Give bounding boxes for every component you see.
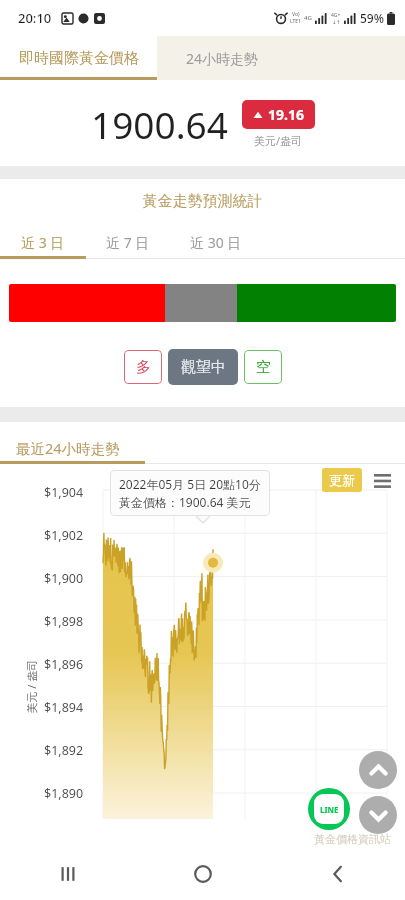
staticText: LINE: [320, 804, 339, 815]
staticText: 美元 / 盎司: [23, 659, 38, 713]
button[interactable]: 近 7 日: [86, 225, 170, 259]
staticText: 最近24小時走勢: [16, 438, 120, 458]
staticText: 美元/盎司: [254, 133, 303, 148]
button[interactable]: Scroll up: [359, 751, 397, 789]
staticText: $1,896: [44, 656, 84, 673]
staticText: 近 7 日: [106, 233, 150, 252]
staticText: 59%: [360, 10, 384, 26]
staticText: 24小時走勢: [186, 49, 259, 68]
button[interactable]: 觀望中: [168, 349, 238, 385]
staticText: 即時國際黃金價格: [19, 49, 139, 68]
staticText: 19.16: [268, 105, 304, 124]
staticText: LTE1: [290, 18, 301, 25]
button[interactable]: 19.16: [253, 105, 304, 124]
button[interactable]: Home: [135, 848, 270, 900]
staticText: 更新: [329, 472, 355, 488]
staticText: 20:10: [18, 9, 52, 27]
staticText: 4G: [304, 14, 312, 22]
button[interactable]: Recents: [0, 848, 135, 900]
button[interactable]: 空: [244, 350, 282, 384]
staticText: 2022年05月 5日 20點10分: [119, 476, 261, 492]
button[interactable]: 近 30 日: [170, 225, 262, 259]
staticText: $1,894: [44, 699, 84, 716]
staticText: 1900.64: [91, 99, 228, 149]
staticText: 4G+: [331, 12, 341, 19]
staticText: $1,892: [44, 742, 84, 759]
button[interactable]: 近 3 日: [0, 225, 86, 259]
button[interactable]: LINE: [308, 788, 350, 830]
button[interactable]: Menu: [371, 469, 393, 491]
staticText: 觀望中: [181, 358, 226, 377]
button[interactable]: 多: [124, 350, 162, 384]
staticText: 黃金價格：1900.64 美元: [119, 494, 251, 510]
button[interactable]: 更新: [329, 472, 355, 488]
staticText: 近 30 日: [190, 233, 242, 252]
button[interactable]: 24小時走勢: [157, 36, 287, 80]
staticText: ↓↑: [332, 19, 341, 25]
staticText: $1,902: [44, 527, 84, 544]
staticText: $1,898: [44, 613, 84, 630]
staticText: 多: [136, 358, 151, 377]
staticText: $1,890: [44, 785, 84, 802]
button[interactable]: Scroll down: [359, 796, 397, 834]
staticText: 空: [256, 358, 271, 377]
staticText: 黃金走勢預測統計: [0, 192, 405, 211]
staticText: Vo): [292, 11, 300, 18]
staticText: 黃金價格資訊站: [314, 832, 391, 846]
button[interactable]: Back: [270, 848, 405, 900]
staticText: $1,900: [44, 570, 84, 587]
button[interactable]: 即時國際黃金價格: [0, 36, 157, 80]
staticText: 近 3 日: [21, 233, 65, 252]
staticText: $1,904: [44, 484, 84, 501]
